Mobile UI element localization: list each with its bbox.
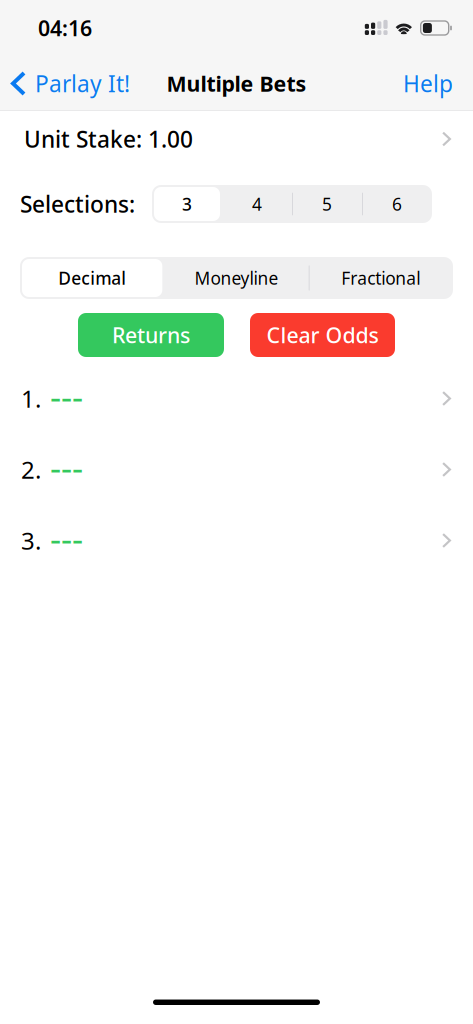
button[interactable]: 1. — [0, 363, 473, 434]
staticText: 3 — [182, 192, 192, 215]
staticText: Fractional — [341, 266, 420, 289]
button[interactable]: Help — [403, 59, 473, 107]
staticText: Help — [403, 68, 453, 98]
button[interactable]: 2. — [0, 434, 473, 505]
button[interactable]: 6 — [362, 185, 432, 223]
button[interactable]: Clear Odds — [250, 313, 395, 357]
button[interactable]: 3 — [152, 185, 222, 223]
staticText: 1. — [21, 383, 41, 414]
staticText: Clear Odds — [266, 321, 378, 349]
staticText: --- — [50, 444, 83, 490]
button[interactable]: 4 — [222, 185, 292, 223]
staticText: --- — [50, 515, 83, 561]
button[interactable]: Decimal — [20, 257, 164, 299]
button[interactable]: Unit Stake: 1.00 — [0, 111, 473, 167]
staticText: Selections: — [20, 189, 135, 219]
staticText: Multiple Bets — [166, 69, 306, 98]
staticText: Unit Stake: 1.00 — [24, 124, 193, 154]
staticText: 5 — [322, 192, 332, 215]
staticText: Returns — [112, 321, 190, 349]
button[interactable]: 5 — [292, 185, 362, 223]
staticText: 2. — [21, 454, 41, 485]
button[interactable]: Moneyline — [164, 257, 309, 299]
staticText: 4 — [252, 192, 262, 215]
staticText: --- — [50, 373, 83, 419]
button[interactable]: Fractional — [309, 257, 453, 299]
button[interactable]: Returns — [78, 313, 224, 357]
button[interactable]: Parlay It! — [0, 62, 130, 104]
staticText: Moneyline — [194, 266, 278, 289]
button[interactable]: 3. — [0, 505, 473, 576]
staticText: 3. — [21, 525, 41, 556]
staticText: Decimal — [58, 266, 126, 289]
staticText: 6 — [392, 192, 402, 215]
staticText: Parlay It! — [35, 68, 130, 98]
staticText: 04:16 — [38, 14, 92, 42]
